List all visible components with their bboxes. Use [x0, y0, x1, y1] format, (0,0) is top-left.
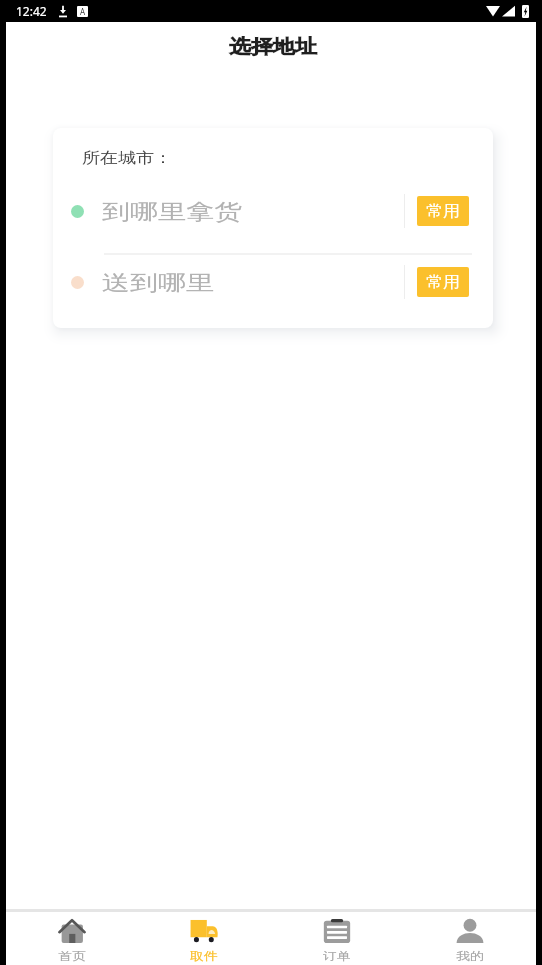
other: Home: [58, 919, 86, 943]
staticText: 首页: [58, 950, 86, 962]
button[interactable]: 常用: [417, 267, 469, 297]
staticText: 送到哪里: [102, 269, 214, 296]
staticText: 我的: [456, 950, 484, 962]
button[interactable]: Profile: [403, 912, 536, 965]
staticText: 12:42: [16, 3, 47, 19]
other: Profile: [456, 919, 484, 943]
button[interactable]: 送到哪里: [53, 252, 493, 312]
staticText: 到哪里拿货: [102, 198, 242, 225]
button[interactable]: 到哪里拿货: [53, 181, 493, 241]
other: Pickup: [190, 919, 218, 943]
staticText: 订单: [323, 950, 351, 962]
staticText: 取件: [190, 950, 218, 962]
button[interactable]: 常用: [417, 196, 469, 226]
staticText: 所在城市：: [82, 149, 172, 168]
staticText: 选择地址: [229, 35, 317, 59]
staticText: 常用: [426, 202, 460, 221]
staticText: 常用: [426, 273, 460, 292]
button[interactable]: Pickup: [138, 912, 270, 965]
staticText: A: [80, 6, 86, 17]
button[interactable]: Orders: [270, 912, 403, 965]
other: Orders: [323, 919, 351, 943]
button[interactable]: Home: [6, 912, 138, 965]
